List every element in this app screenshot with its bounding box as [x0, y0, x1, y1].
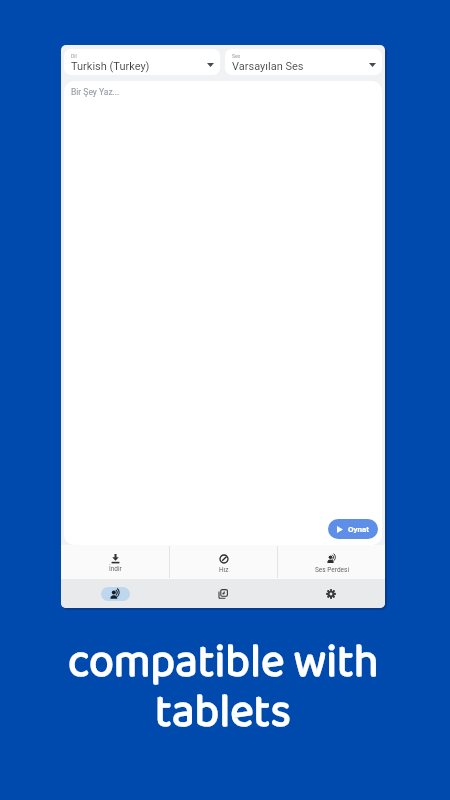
staticText: Hız — [219, 566, 229, 574]
staticText: Bir Şey Yaz... — [71, 87, 120, 97]
button[interactable] — [277, 579, 385, 608]
staticText: Varsayılan Ses — [232, 60, 304, 73]
staticText: Ses Perdesi — [315, 566, 349, 574]
staticText: tablets — [155, 676, 291, 748]
button[interactable]: Ses Perdesi — [278, 545, 385, 579]
button[interactable]: Ses — [225, 49, 382, 75]
button[interactable] — [169, 579, 277, 608]
button[interactable]: Hız — [170, 545, 277, 579]
staticText: compatible with — [68, 626, 379, 698]
button[interactable]: İndir — [61, 545, 169, 579]
staticText: İndir — [109, 565, 122, 573]
staticText: Dil — [71, 53, 77, 59]
staticText: Turkish (Turkey) — [71, 60, 150, 73]
staticText: Oynat — [348, 525, 370, 534]
staticText: Ses — [232, 53, 241, 59]
button[interactable]: Oynat — [328, 519, 378, 539]
button[interactable]: Dil — [64, 49, 220, 75]
button[interactable] — [61, 579, 169, 608]
